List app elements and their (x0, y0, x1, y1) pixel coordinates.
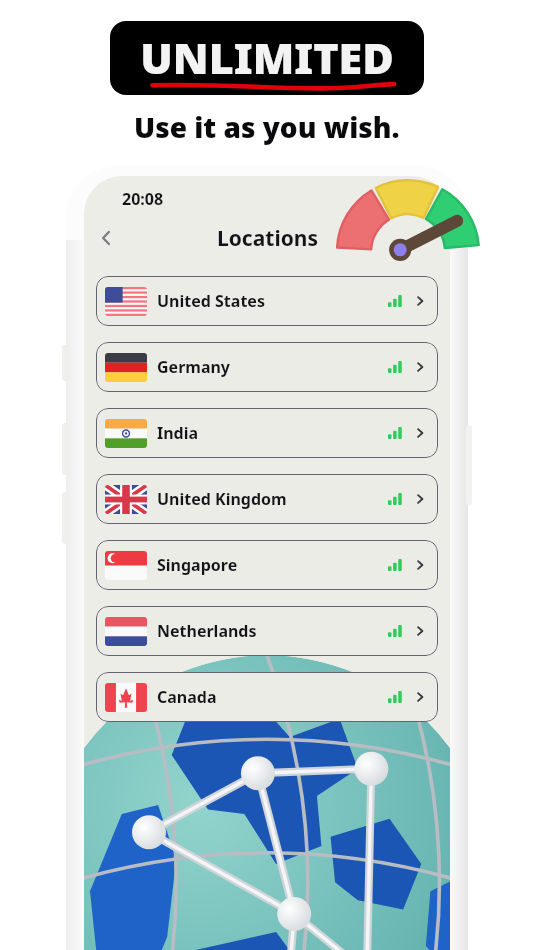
button[interactable]: United States (96, 276, 438, 326)
button[interactable]: Canada (96, 672, 438, 722)
button[interactable]: Netherlands (96, 606, 438, 656)
button[interactable]: Singapore (96, 540, 438, 590)
button[interactable]: United Kingdom (96, 474, 438, 524)
button[interactable]: India (96, 408, 438, 458)
button[interactable]: Back (89, 221, 123, 255)
staticText: Germany (157, 356, 388, 378)
staticText: India (157, 422, 388, 444)
staticText: Netherlands (157, 620, 388, 642)
staticText: Locations (217, 224, 318, 253)
staticText: UNLIMITED (110, 28, 424, 87)
staticText: Use it as you wish. (134, 108, 400, 146)
button[interactable]: Germany (96, 342, 438, 392)
staticText: United States (157, 290, 388, 312)
staticText: Canada (157, 686, 388, 708)
staticText: 20:08 (122, 188, 164, 210)
staticText: Singapore (157, 554, 388, 576)
staticText: United Kingdom (157, 488, 388, 510)
